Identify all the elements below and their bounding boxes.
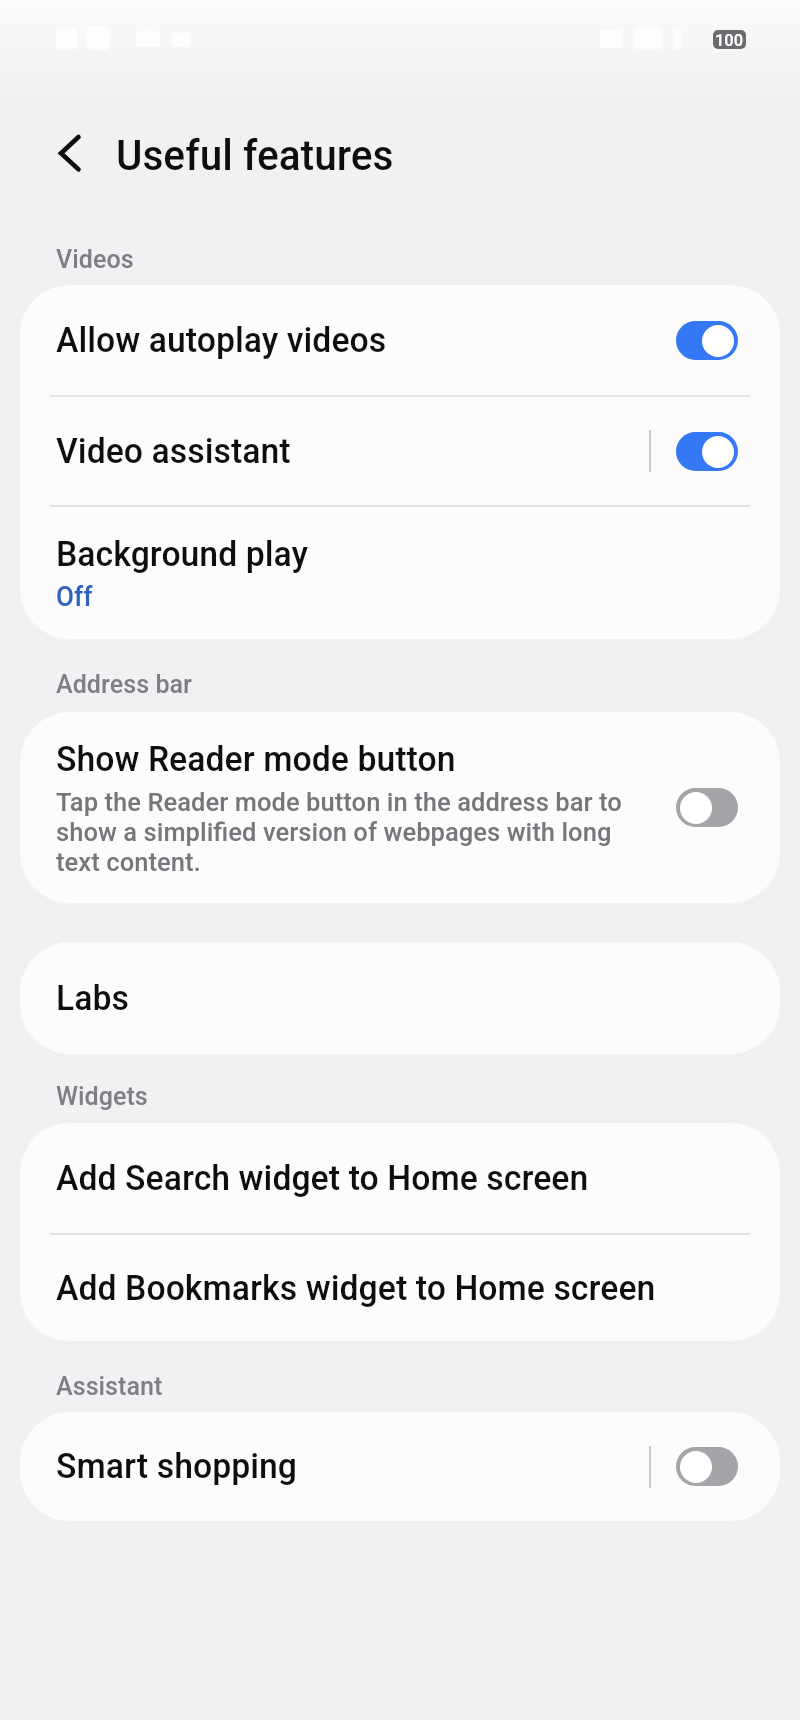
button[interactable]: Labs <box>20 942 780 1054</box>
button[interactable]: Add Search widget to Home screen <box>20 1123 780 1233</box>
staticText: Background play <box>56 534 309 575</box>
staticText: Video assistant <box>56 431 291 472</box>
staticText: Off <box>56 581 93 613</box>
staticText: 100 <box>715 30 744 49</box>
staticText: Assistant <box>56 1371 163 1401</box>
staticText: Labs <box>56 978 129 1019</box>
staticText: Widgets <box>56 1081 148 1111</box>
staticText: Add Bookmarks widget to Home screen <box>56 1268 656 1309</box>
staticText: Show Reader mode button <box>56 739 456 780</box>
button[interactable]: Navigate up <box>40 125 98 183</box>
button[interactable]: Switch off <box>676 1447 738 1486</box>
staticText: Address bar <box>56 669 193 699</box>
button[interactable]: Add Bookmarks widget to Home screen <box>20 1235 780 1341</box>
staticText: Add Search widget to Home screen <box>56 1158 589 1199</box>
staticText: Tap the Reader mode button in the addres… <box>56 787 638 877</box>
button[interactable]: Smart shopping <box>20 1412 780 1521</box>
button[interactable]: Show Reader mode button <box>20 712 780 903</box>
staticText: Useful features <box>116 131 394 180</box>
button[interactable]: Switch on <box>676 432 738 471</box>
button[interactable]: Switch off <box>676 788 738 827</box>
button[interactable]: Allow autoplay videos <box>20 285 780 395</box>
button[interactable]: Video assistant <box>20 397 780 505</box>
button[interactable]: Switch on <box>676 321 738 360</box>
staticText: Smart shopping <box>56 1446 297 1487</box>
staticText: Videos <box>56 244 134 274</box>
button[interactable]: Background play <box>20 507 780 639</box>
staticText: Allow autoplay videos <box>56 320 387 361</box>
